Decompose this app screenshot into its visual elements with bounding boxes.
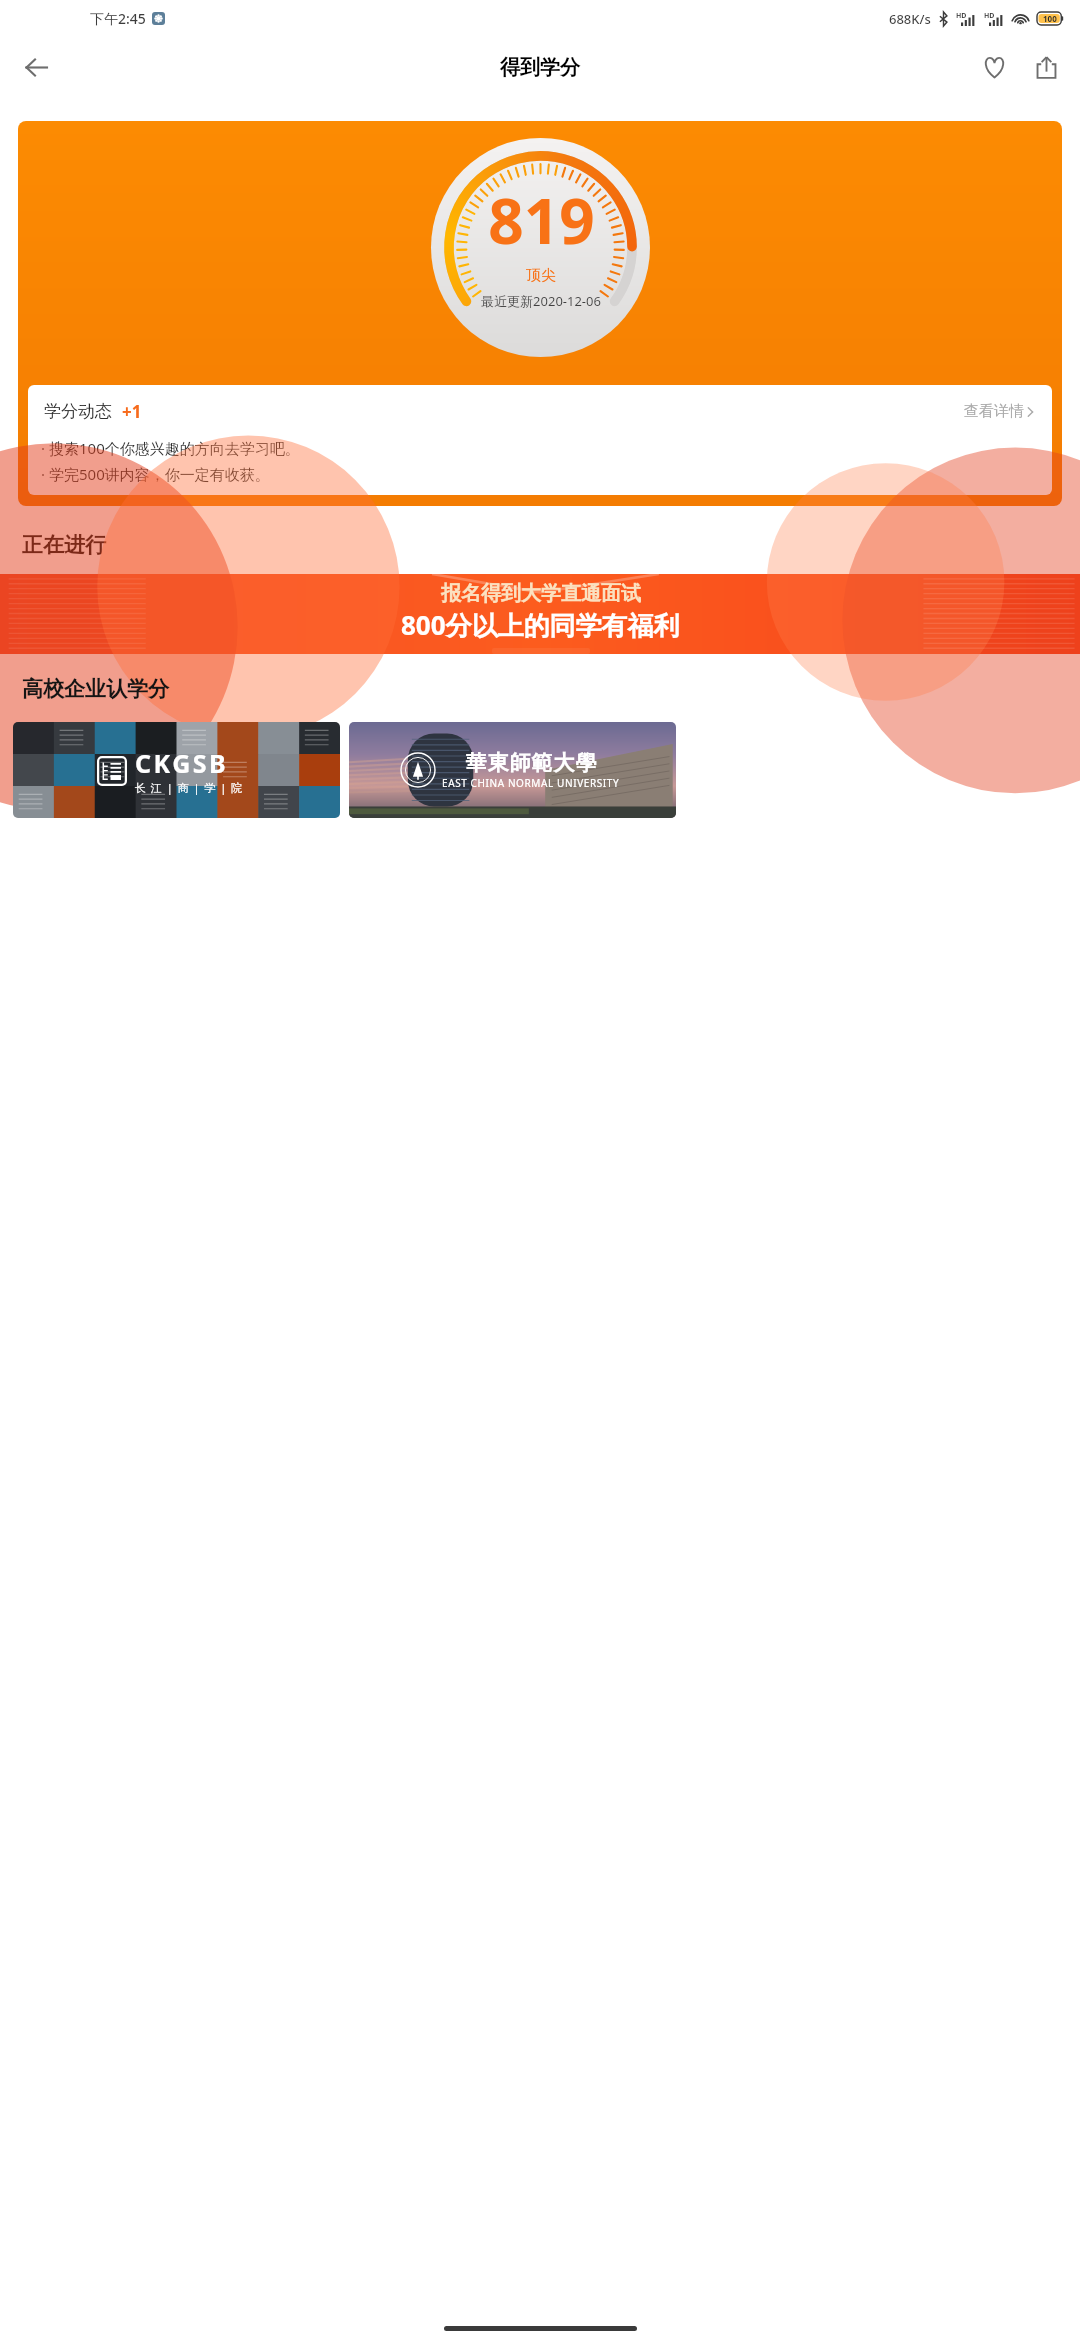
staticText: 长 江 | 商 | 学 | 院 (135, 780, 244, 795)
button[interactable]: Favorite (968, 41, 1020, 93)
staticText: 最近更新2020-12-06 (481, 292, 601, 310)
staticText: · (41, 438, 46, 458)
staticText: +1 (122, 400, 142, 423)
staticText: CKGSB (135, 746, 229, 780)
button[interactable]: CKGSB (13, 722, 340, 818)
staticText: HD (984, 11, 995, 21)
staticText: 学分动态 (44, 401, 112, 422)
staticText: 華東師範大學 (465, 750, 597, 776)
staticText: 下午2:45 (90, 9, 146, 28)
staticText: · (41, 464, 46, 484)
button[interactable]: Back (10, 41, 62, 93)
button[interactable]: 报名得到大学直通面试 (0, 574, 1080, 654)
staticText: 搜索100个你感兴趣的方向去学习吧。 (49, 438, 300, 458)
staticText: 正在进行 (22, 532, 106, 558)
staticText: 学完500讲内容，你一定有收获。 (49, 464, 270, 484)
button[interactable]: 華東師範大學 (349, 722, 676, 818)
staticText: 688K/s (889, 10, 931, 28)
staticText: 800分以上的同学有福利 (401, 607, 680, 643)
staticText: HD (956, 11, 967, 21)
staticText: 819 (488, 178, 595, 262)
button[interactable]: 查看详情 (960, 398, 1038, 425)
staticText: 报名得到大学直通面试 (441, 581, 641, 606)
staticText: 高校企业认学分 (22, 676, 169, 702)
staticText: 顶尖 (526, 266, 556, 285)
staticText: EAST CHINA NORMAL UNIVERSITY (442, 776, 620, 790)
staticText: 100 (1043, 13, 1057, 24)
button[interactable]: Share (1020, 41, 1072, 93)
staticText: 得到学分 (500, 55, 580, 80)
staticText: 查看详情 (964, 402, 1024, 421)
button[interactable]: 819 (18, 121, 1062, 506)
